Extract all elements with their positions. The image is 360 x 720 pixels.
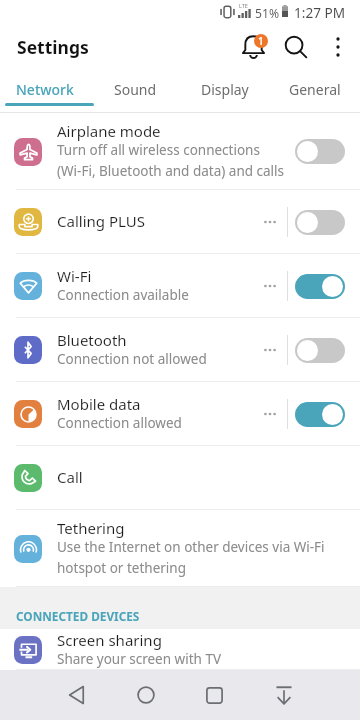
button[interactable]: Airplane mode <box>0 113 360 190</box>
button[interactable]: Network <box>0 69 90 113</box>
button[interactable]: Tethering <box>0 510 360 587</box>
staticText: Network <box>16 80 74 99</box>
button[interactable]: Options <box>257 271 283 301</box>
staticText: 51% <box>255 5 280 22</box>
button[interactable]: Sound <box>90 69 180 113</box>
staticText: LTE <box>239 2 248 9</box>
button[interactable]: Options <box>257 399 283 429</box>
button[interactable]: Screen sharing <box>0 629 360 670</box>
button[interactable]: Search <box>274 24 318 69</box>
button[interactable]: Turn off <box>295 274 345 299</box>
button[interactable]: Notifications <box>231 24 275 69</box>
staticText: Connection available <box>57 286 189 304</box>
staticText: Mobile data <box>57 394 141 414</box>
button[interactable]: Turn on <box>295 139 345 164</box>
button[interactable]: Display <box>180 69 270 113</box>
button[interactable]: Mobile data <box>0 382 360 446</box>
staticText: Screen sharing <box>57 630 162 650</box>
button[interactable]: Hide navigation bar <box>249 670 318 720</box>
button[interactable]: Options <box>257 207 283 237</box>
staticText: Display <box>201 80 249 99</box>
staticText: Call <box>57 467 83 487</box>
button[interactable]: Options <box>257 335 283 365</box>
button[interactable]: Recent apps <box>180 670 249 720</box>
staticText: 1 <box>258 34 264 48</box>
staticText: Sound <box>114 80 157 99</box>
staticText: Turn off all wireless connections (Wi-Fi… <box>57 141 285 180</box>
button[interactable]: Home <box>111 670 180 720</box>
button[interactable]: Turn on <box>295 210 345 235</box>
button[interactable]: Bluetooth <box>0 318 360 382</box>
button[interactable]: Calling PLUS <box>0 190 360 254</box>
button[interactable]: Turn on <box>295 338 345 363</box>
staticText: Share your screen with TV <box>57 650 221 668</box>
staticText: Connection allowed <box>57 414 182 432</box>
staticText: CONNECTED DEVICES <box>16 608 140 624</box>
button[interactable]: Call <box>0 446 360 510</box>
staticText: Wi-Fi <box>57 266 92 286</box>
button[interactable]: Back <box>42 670 111 720</box>
staticText: General <box>289 80 341 99</box>
staticText: Settings <box>17 35 89 59</box>
button[interactable]: More options <box>318 24 358 69</box>
staticText: Calling PLUS <box>57 211 145 231</box>
staticText: Airplane mode <box>57 121 161 141</box>
staticText: Bluetooth <box>57 330 127 350</box>
staticText: Connection not allowed <box>57 350 207 368</box>
button[interactable]: General <box>270 69 360 113</box>
staticText: Use the Internet on other devices via Wi… <box>57 538 325 577</box>
button[interactable]: Turn off <box>295 402 345 427</box>
staticText: Tethering <box>57 518 125 538</box>
button[interactable]: Wi-Fi <box>0 254 360 318</box>
staticText: 1:27 PM <box>294 3 346 22</box>
